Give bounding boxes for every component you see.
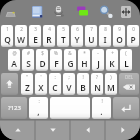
button[interactable]: Shift	[1, 73, 18, 95]
staticText: 2	[20, 26, 23, 32]
button[interactable]: 1	[1, 25, 13, 47]
button[interactable]: 9	[113, 25, 125, 47]
button[interactable]: 2	[15, 25, 27, 47]
staticText: @	[12, 50, 17, 56]
staticText: E	[33, 34, 38, 45]
button[interactable]	[50, 97, 90, 119]
button[interactable]: %	[50, 49, 62, 71]
staticText: D	[39, 58, 46, 69]
staticText: !	[101, 98, 103, 104]
staticText: +	[111, 50, 114, 56]
button[interactable]: Search	[98, 4, 116, 21]
button[interactable]: Right	[105, 119, 140, 140]
button[interactable]: *	[78, 49, 90, 71]
staticText: &	[68, 50, 72, 56]
staticText: U	[88, 34, 95, 45]
staticText: #	[27, 50, 30, 56]
button[interactable]: ?	[91, 73, 103, 95]
button[interactable]: "	[21, 73, 33, 95]
button[interactable]: @	[8, 49, 20, 71]
staticText: DEL	[125, 74, 133, 80]
button[interactable]: Up	[0, 119, 35, 140]
staticText: X	[38, 82, 44, 93]
staticText: I	[103, 34, 107, 45]
staticText: H	[81, 58, 88, 69]
staticText: $	[41, 50, 44, 56]
staticText: ?123	[8, 104, 21, 112]
staticText: 5	[62, 26, 65, 32]
staticText: N	[94, 82, 101, 93]
staticText: %	[54, 50, 58, 56]
staticText: .	[100, 106, 103, 117]
staticText: S	[26, 58, 31, 69]
staticText: Z	[25, 82, 30, 93]
button[interactable]: !	[92, 97, 111, 119]
staticText: F	[54, 58, 59, 69]
staticText: A	[11, 58, 17, 69]
staticText: W	[17, 34, 25, 45]
staticText: L	[124, 58, 129, 69]
button[interactable]: Delete	[119, 73, 139, 95]
button[interactable]: )	[105, 73, 117, 95]
staticText: 1	[6, 26, 9, 32]
button[interactable]: #	[22, 49, 34, 71]
staticText: J	[97, 58, 100, 69]
staticText: :	[54, 74, 56, 80]
button[interactable]: Down	[35, 119, 70, 140]
staticText: !	[82, 74, 84, 80]
staticText: -	[97, 50, 99, 56]
button[interactable]: 3	[29, 25, 41, 47]
button[interactable]: 5	[57, 25, 69, 47]
staticText: B	[80, 82, 86, 93]
staticText: 7	[90, 26, 93, 32]
staticText: *	[83, 50, 86, 56]
staticText: Y	[74, 34, 80, 45]
staticText: 6	[76, 26, 79, 32]
button[interactable]: Enter	[113, 97, 139, 119]
button[interactable]: !	[77, 73, 89, 95]
staticText: T	[61, 34, 66, 45]
staticText: '	[40, 74, 42, 80]
button[interactable]: +	[106, 49, 118, 71]
button[interactable]: :	[49, 73, 61, 95]
button[interactable]: 0	[127, 25, 139, 47]
staticText: ;	[68, 74, 70, 80]
staticText: Q	[4, 34, 11, 45]
staticText: R	[46, 34, 52, 45]
button[interactable]: Symbols	[1, 97, 27, 119]
staticText: O	[116, 34, 123, 45]
staticText: 4	[48, 26, 51, 32]
staticText: 8	[104, 26, 107, 32]
staticText: V	[66, 82, 72, 93]
staticText: M	[107, 82, 115, 93]
button[interactable]: 8	[99, 25, 111, 47]
staticText: C	[52, 82, 58, 93]
button[interactable]: Dictionary	[31, 5, 45, 20]
button[interactable]: :	[29, 97, 48, 119]
button[interactable]: '	[35, 73, 47, 95]
button[interactable]: 7	[85, 25, 97, 47]
staticText: )	[110, 74, 112, 80]
staticText: K	[109, 58, 115, 69]
button[interactable]: Clipboard	[75, 4, 93, 18]
staticText: ?	[96, 74, 98, 80]
staticText: "	[26, 74, 28, 80]
staticText: P	[130, 34, 136, 45]
button[interactable]: Change keyboard	[2, 8, 22, 22]
button[interactable]: (	[120, 49, 132, 71]
button[interactable]: -	[92, 49, 104, 71]
staticText: (	[125, 50, 127, 56]
button[interactable]: Left	[70, 119, 105, 140]
staticText: 9	[118, 26, 121, 32]
button[interactable]: Voice input	[54, 5, 68, 20]
staticText: ,	[37, 106, 40, 117]
button[interactable]: ;	[63, 73, 75, 95]
button[interactable]: 4	[43, 25, 55, 47]
button[interactable]: Resize keyboard	[121, 6, 131, 18]
button[interactable]: $	[36, 49, 48, 71]
button[interactable]: 6	[71, 25, 83, 47]
button[interactable]: &	[64, 49, 76, 71]
staticText: :	[38, 98, 40, 104]
staticText: 0	[132, 26, 135, 32]
staticText: G	[67, 58, 74, 69]
